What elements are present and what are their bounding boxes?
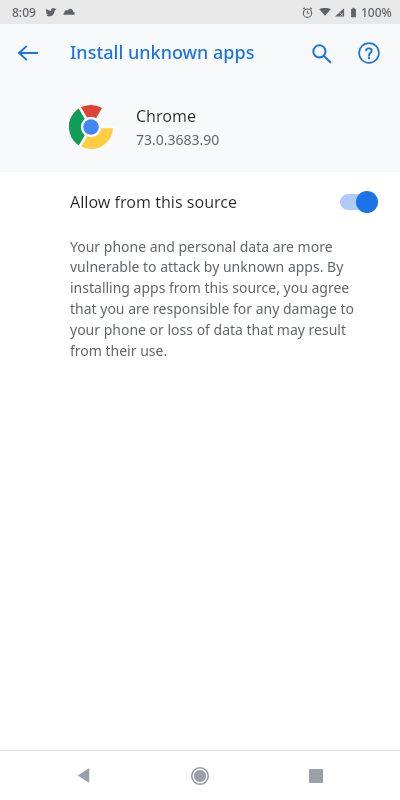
staticText: 73.0.3683.90 <box>136 130 220 149</box>
staticText: Allow from this source <box>70 191 340 213</box>
staticText: Your phone and personal data are more vu… <box>70 237 378 361</box>
button[interactable]: Back <box>52 751 116 800</box>
button[interactable]: Allow from this source <box>0 172 400 232</box>
button[interactable]: Home <box>168 751 232 800</box>
button[interactable]: Back <box>6 31 50 75</box>
staticText: Chrome <box>136 105 196 127</box>
staticText: Install unknown apps <box>70 40 255 65</box>
staticText: 100% <box>361 4 392 20</box>
button[interactable]: Help <box>348 32 390 74</box>
staticText: 8:09 <box>12 4 36 20</box>
button[interactable]: Search <box>300 32 342 74</box>
button[interactable]: Chrome <box>0 81 400 172</box>
button[interactable]: Recent apps <box>284 751 348 800</box>
